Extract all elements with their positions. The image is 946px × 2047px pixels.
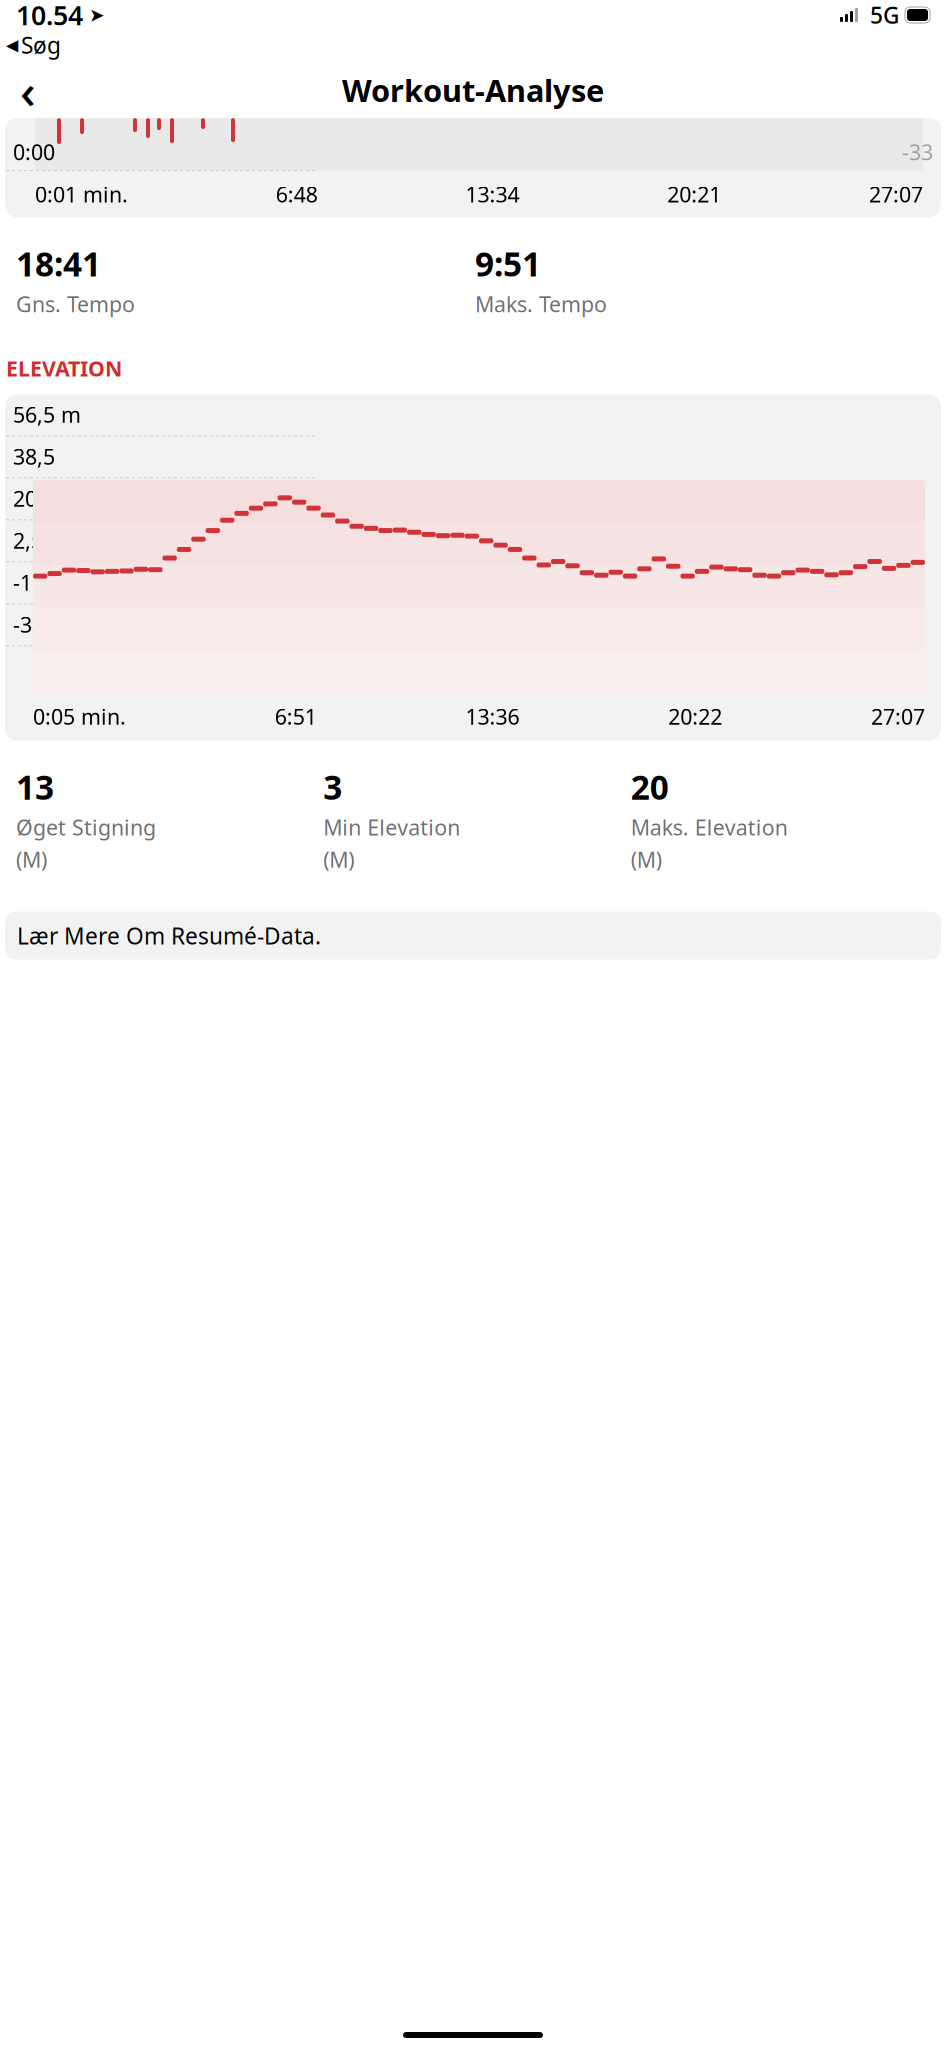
staticText: 3: [323, 765, 342, 809]
staticText: (M): [323, 845, 354, 874]
staticText: 27:07: [869, 180, 923, 208]
staticText: 20:21: [667, 180, 721, 208]
staticText: 13:36: [465, 702, 519, 731]
staticText: Søg: [21, 30, 61, 60]
staticText: ➤: [83, 4, 105, 26]
staticText: 0:00: [13, 138, 55, 166]
staticText: (M): [631, 845, 662, 874]
staticText: Lær Mere Om Resumé-Data.: [17, 921, 321, 951]
button[interactable]: Back: [6, 68, 50, 112]
staticText: 20:22: [668, 702, 722, 731]
staticText: Øget Stigning: [16, 813, 156, 841]
staticText: 27:07: [871, 702, 925, 731]
staticText: 6:48: [276, 180, 318, 208]
staticText: -15,5: [13, 568, 62, 597]
staticText: -33: [902, 138, 933, 166]
staticText: 10.54: [16, 0, 83, 33]
staticText: ELEVATION: [6, 354, 122, 382]
staticText: Maks. Elevation: [631, 813, 788, 841]
staticText: 5G: [858, 0, 899, 30]
staticText: ‹: [20, 58, 36, 122]
staticText: 0:01 min.: [35, 180, 128, 208]
staticText: Gns. Tempo: [16, 290, 135, 318]
staticText: 56,5 m: [13, 400, 81, 429]
staticText: 38,5: [13, 442, 55, 471]
staticText: 13: [16, 765, 54, 809]
staticText: ◀: [6, 36, 18, 54]
staticText: Workout-Analyse: [342, 70, 604, 110]
button[interactable]: Lær Mere Om Resumé-Data.: [5, 912, 941, 960]
staticText: 13:34: [465, 180, 519, 208]
staticText: 0:05 min.: [33, 702, 126, 731]
staticText: 6:51: [275, 702, 317, 731]
staticText: -33,5: [13, 610, 62, 639]
staticText: 20: [631, 765, 669, 809]
staticText: 2,5: [13, 526, 43, 555]
staticText: 9:51: [475, 241, 541, 286]
staticText: (M): [16, 845, 47, 874]
staticText: 18:41: [16, 241, 101, 286]
staticText: Maks. Tempo: [475, 290, 607, 318]
staticText: 20,5: [13, 484, 55, 513]
staticText: Min Elevation: [323, 813, 460, 841]
